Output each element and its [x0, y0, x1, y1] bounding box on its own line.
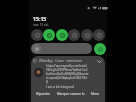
staticText: 15:15: [33, 15, 47, 22]
staticText: mar. 15 oct.: [33, 23, 50, 27]
staticText: I am a bit intrigued: [46, 85, 74, 89]
staticText: WhatsApp · Conne · maintenant: [39, 59, 83, 63]
staticText: https://open.spotify.com/track/1Bk1gIkzT…: [46, 64, 89, 84]
button[interactable]: WhatsApp · Conne · maintenant: [31, 56, 105, 102]
button[interactable]: Do not disturb: [56, 29, 68, 41]
staticText: Marquer comme lu: [57, 92, 85, 96]
staticText: Menu: [91, 92, 100, 96]
other: Status icons: [87, 6, 105, 10]
button[interactable]: Répondre: [35, 90, 51, 98]
button[interactable]: Brightness: [31, 43, 92, 54]
button[interactable]: Wi-Fi: [31, 29, 43, 41]
button[interactable]: Marquer comme lu: [56, 90, 86, 98]
button[interactable]: Battery saver: [93, 29, 105, 41]
button[interactable]: More settings: [94, 43, 106, 55]
button[interactable]: Collapse: [96, 58, 103, 65]
button[interactable]: Auto rotate: [81, 29, 93, 41]
button[interactable]: Menu: [90, 90, 101, 98]
button[interactable]: Flashlight: [68, 29, 80, 41]
staticText: Répondre: [36, 92, 50, 96]
button[interactable]: Bluetooth: [43, 29, 55, 41]
